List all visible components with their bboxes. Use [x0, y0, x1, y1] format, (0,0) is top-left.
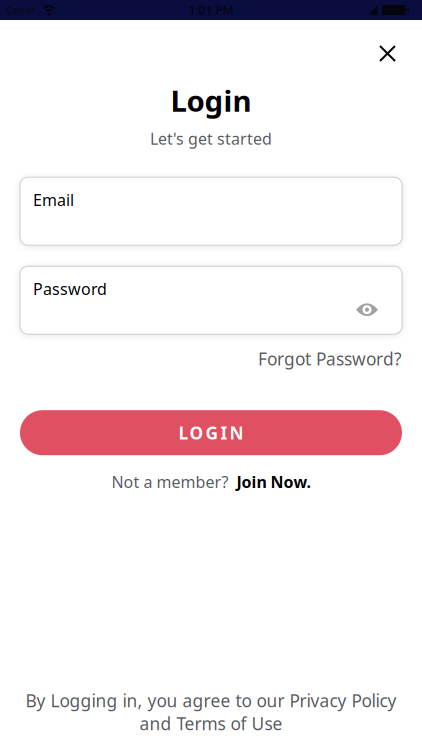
staticText: Forgot Password?	[258, 347, 402, 370]
staticText: Carrier	[6, 4, 36, 16]
button[interactable]: Email	[20, 177, 402, 245]
button[interactable]	[380, 46, 395, 61]
staticText: Password	[33, 278, 107, 299]
button[interactable]	[356, 303, 378, 316]
staticText: Let's get started	[150, 128, 272, 149]
staticText: By Logging in, you agree to our Privacy …	[25, 689, 396, 712]
button[interactable]: LOGIN	[20, 410, 402, 455]
staticText: Join Now.	[236, 471, 310, 492]
staticText: LOGIN	[178, 421, 243, 444]
button[interactable]: Password	[20, 266, 402, 334]
staticText: and Terms of Use	[139, 712, 282, 735]
staticText: Email	[33, 189, 74, 210]
button[interactable]: Join Now.	[236, 471, 310, 492]
staticText: Not a member?	[111, 471, 228, 492]
staticText: Login	[170, 81, 251, 120]
button[interactable]: Forgot Password?	[258, 347, 402, 370]
staticText: 1:01 PM	[188, 2, 233, 18]
